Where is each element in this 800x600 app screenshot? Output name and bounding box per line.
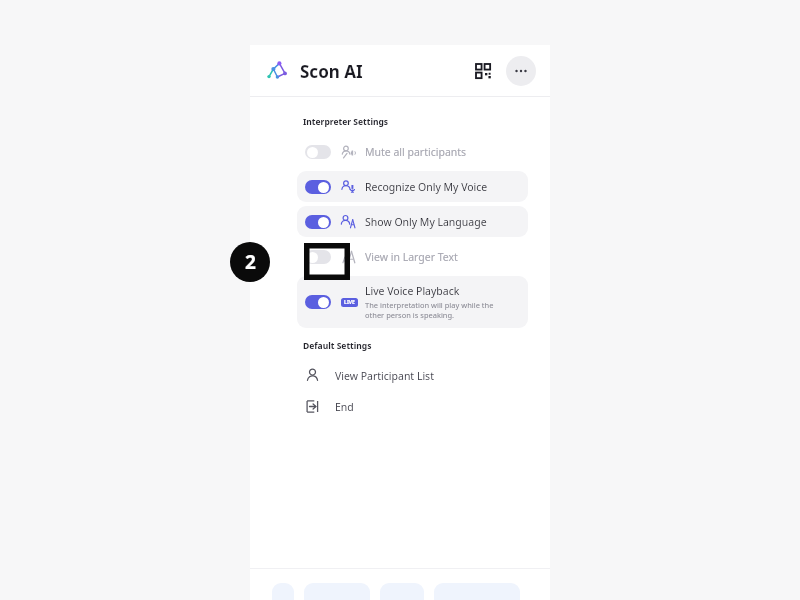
button[interactable]: Scan QR code [468,56,498,86]
staticText: End [335,400,354,414]
staticText: Show Only My Language [365,215,487,229]
button[interactable]: Bottom action [272,583,294,600]
staticText: 2 [245,249,256,275]
button[interactable]: On [305,180,331,194]
button[interactable]: More options [506,56,536,86]
staticText: Mute all participants [365,145,467,159]
button[interactable]: On [297,206,528,237]
button[interactable]: View Participant List [290,360,535,391]
staticText: LIVE [344,299,355,306]
button[interactable]: Off [305,250,331,264]
button[interactable]: On [297,276,528,328]
button[interactable]: End [290,391,535,422]
staticText: View Participant List [335,369,434,383]
button[interactable]: Off [297,136,528,167]
button[interactable]: Off [297,241,528,272]
button[interactable]: Off [305,145,331,159]
staticText: Recognize Only My Voice [365,180,488,194]
button[interactable]: On [305,295,331,309]
button[interactable]: On [297,171,528,202]
staticText: Live Voice Playback [365,284,460,298]
button[interactable]: Bottom action [380,583,424,600]
button[interactable]: On [305,215,331,229]
staticText: Interpreter Settings [303,116,389,128]
staticText: View in Larger Text [365,250,458,264]
staticText: The interpretation will play while the o… [365,300,494,320]
staticText: Default Settings [303,340,372,352]
staticText: Scon AI [300,60,363,83]
